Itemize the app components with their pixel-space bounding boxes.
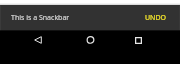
staticText: This is a Snackbar (11, 13, 70, 23)
button[interactable] (0, 5, 180, 30)
staticText: UNDO (145, 13, 167, 23)
button[interactable]: Home (82, 31, 98, 47)
button[interactable]: UNDO (132, 8, 177, 28)
button[interactable]: Recent apps (130, 32, 146, 48)
button[interactable]: Back (30, 32, 46, 48)
